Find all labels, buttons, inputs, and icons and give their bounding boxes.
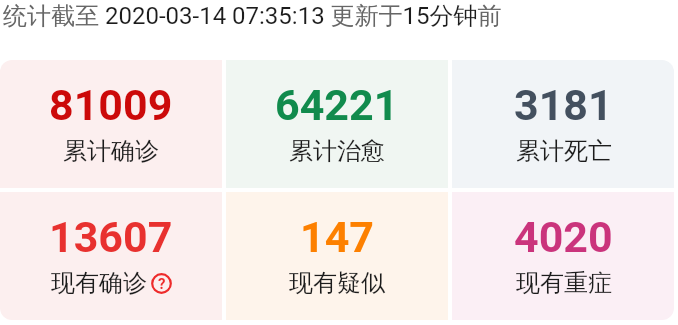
- staticText: 4020: [514, 212, 613, 262]
- staticText: 统计截至 2020-03-14 07:35:13 更新于15分钟前: [3, 1, 502, 31]
- staticText: 现有疑似: [289, 268, 385, 298]
- staticText: 13607: [49, 212, 173, 262]
- staticText: 81009: [49, 80, 173, 130]
- staticText: 现有重症: [516, 268, 612, 298]
- staticText: 3181: [514, 80, 613, 130]
- button[interactable]: 3181: [452, 60, 674, 188]
- button[interactable]: 13607: [0, 192, 222, 320]
- staticText: 147: [300, 212, 375, 262]
- button[interactable]: 147: [226, 192, 448, 320]
- button[interactable]: 64221: [226, 60, 448, 188]
- staticText: 现有确诊: [51, 268, 147, 298]
- button[interactable]: 帮助说明: [151, 273, 172, 294]
- button[interactable]: 4020: [452, 192, 674, 320]
- staticText: 累计死亡: [516, 136, 612, 166]
- button[interactable]: 81009: [0, 60, 222, 188]
- staticText: ?: [158, 275, 166, 293]
- staticText: 累计确诊: [63, 136, 159, 166]
- staticText: 64221: [275, 80, 399, 130]
- staticText: 累计治愈: [289, 136, 385, 166]
